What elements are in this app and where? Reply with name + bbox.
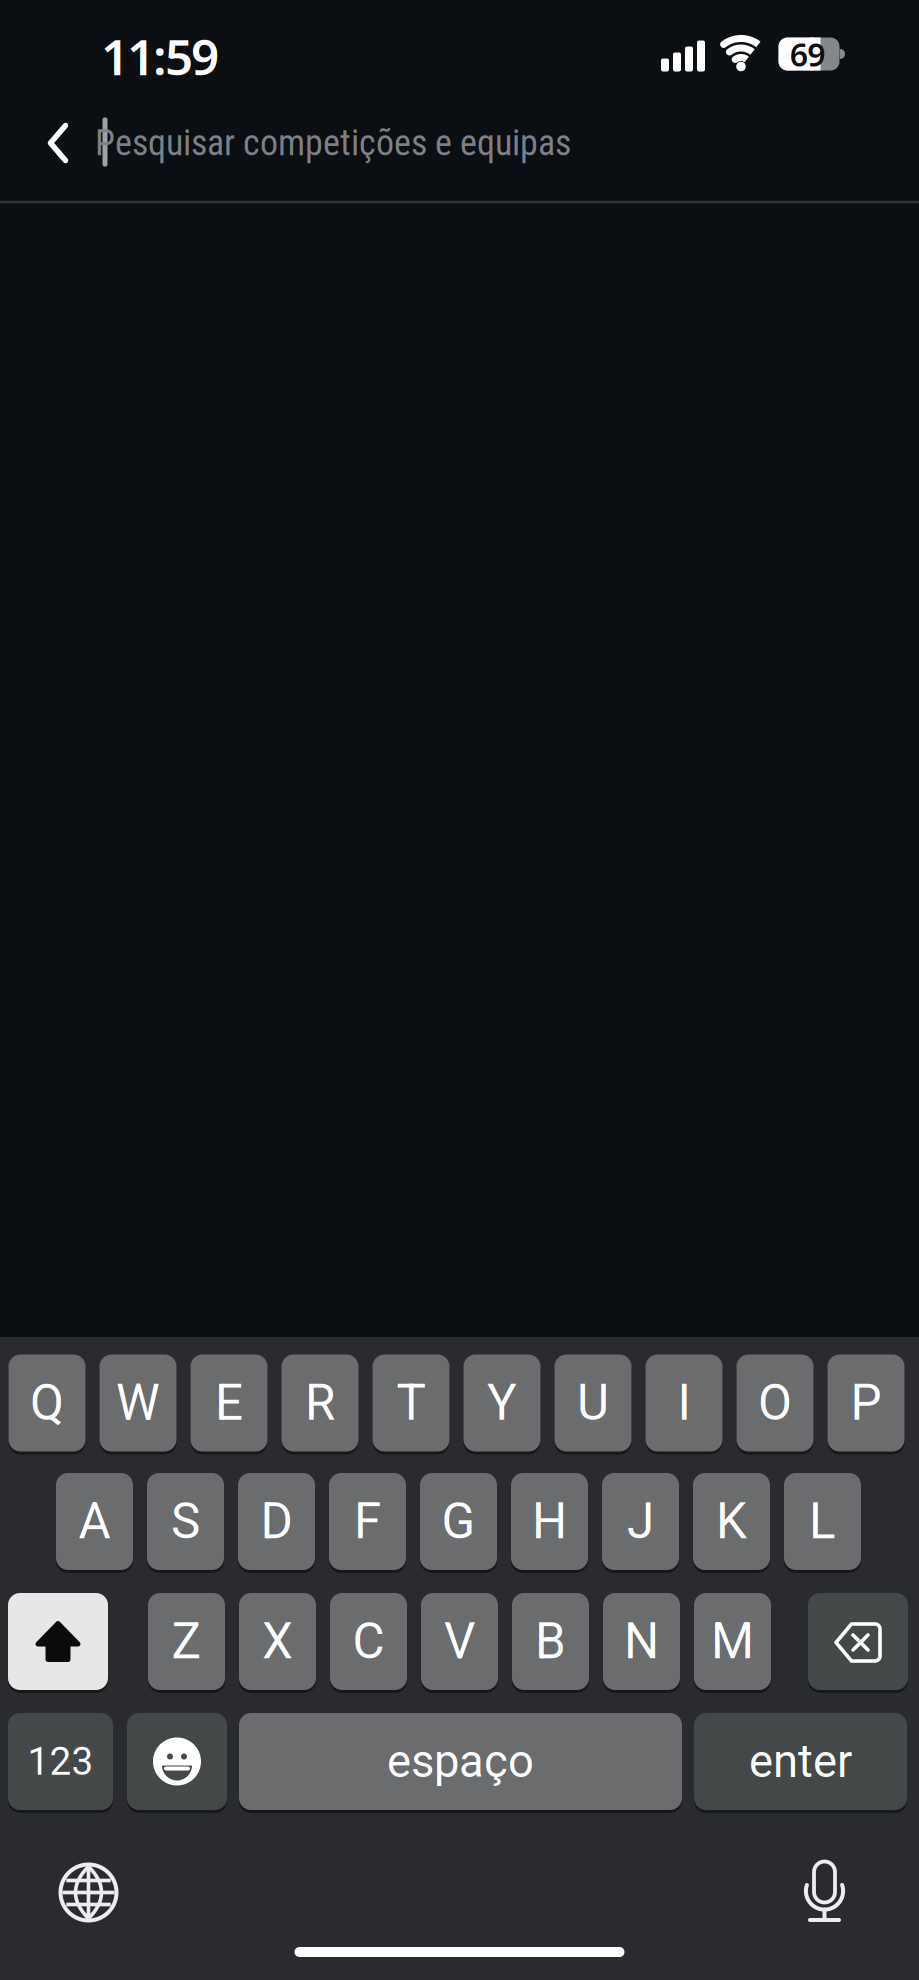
button[interactable]: G <box>420 1471 497 1571</box>
button[interactable]: S <box>147 1471 224 1571</box>
button[interactable]: J <box>602 1471 679 1571</box>
staticText: W <box>116 1374 160 1432</box>
staticText: L <box>809 1493 836 1550</box>
button[interactable]: espaço <box>239 1711 682 1811</box>
button[interactable]: E <box>190 1353 267 1453</box>
button[interactable]: Next keyboard <box>53 1857 123 1927</box>
button[interactable]: I <box>645 1353 722 1453</box>
staticText: C <box>352 1613 384 1670</box>
staticText: A <box>78 1493 110 1550</box>
button[interactable]: C <box>330 1591 407 1691</box>
button[interactable]: Y <box>463 1353 540 1453</box>
staticText: O <box>758 1374 792 1432</box>
staticText: V <box>444 1613 475 1670</box>
button[interactable]: X <box>239 1591 316 1691</box>
staticText: enter <box>749 1735 852 1788</box>
staticText: X <box>262 1613 293 1670</box>
staticText: espaço <box>387 1735 534 1788</box>
button[interactable]: K <box>693 1471 770 1571</box>
button[interactable]: N <box>603 1591 680 1691</box>
staticText: Z <box>171 1613 201 1670</box>
button[interactable]: T <box>372 1353 449 1453</box>
staticText: B <box>535 1613 566 1670</box>
staticText: J <box>627 1493 654 1550</box>
staticText: H <box>532 1493 567 1550</box>
button[interactable]: H <box>511 1471 588 1571</box>
staticText: Q <box>30 1374 64 1432</box>
button[interactable]: D <box>238 1471 315 1571</box>
staticText: P <box>850 1374 881 1432</box>
staticText: S <box>171 1493 200 1550</box>
staticText: 123 <box>27 1739 93 1784</box>
staticText: F <box>354 1493 381 1550</box>
button[interactable]: W <box>99 1353 176 1453</box>
button[interactable]: V <box>421 1591 498 1691</box>
button[interactable]: U <box>554 1353 631 1453</box>
staticText: E <box>215 1374 243 1432</box>
button[interactable]: Back <box>33 118 83 168</box>
button[interactable]: Dictation <box>789 1853 859 1929</box>
staticText: N <box>624 1613 659 1670</box>
staticText: D <box>260 1493 292 1550</box>
button[interactable]: F <box>329 1471 406 1571</box>
staticText: Pesquisar competições e equipas <box>95 122 571 164</box>
staticText: G <box>441 1493 475 1550</box>
button[interactable]: enter <box>694 1711 907 1811</box>
button[interactable]: Delete <box>808 1591 908 1691</box>
button[interactable]: R <box>281 1353 358 1453</box>
staticText: K <box>716 1493 747 1550</box>
staticText: R <box>305 1374 335 1432</box>
staticText: 69 <box>790 33 825 75</box>
staticText: Y <box>487 1374 517 1432</box>
button[interactable]: Q <box>8 1353 85 1453</box>
staticText: I <box>677 1374 690 1432</box>
button[interactable]: A <box>56 1471 133 1571</box>
button[interactable]: O <box>736 1353 813 1453</box>
button[interactable]: M <box>694 1591 771 1691</box>
staticText: U <box>577 1374 609 1432</box>
button[interactable]: Z <box>148 1591 225 1691</box>
staticText: M <box>711 1613 754 1670</box>
button[interactable]: P <box>827 1353 904 1453</box>
staticText: T <box>396 1374 425 1432</box>
button[interactable]: Shift <box>8 1591 108 1691</box>
button[interactable]: B <box>512 1591 589 1691</box>
button[interactable]: L <box>784 1471 861 1571</box>
button[interactable]: Emoji <box>127 1711 227 1811</box>
button[interactable]: 123 <box>8 1711 113 1811</box>
staticText: 11:59 <box>101 23 219 89</box>
